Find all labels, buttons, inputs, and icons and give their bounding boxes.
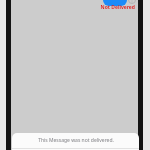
button[interactable] — [103, 0, 127, 6]
button[interactable]: This Message was not delivered. — [12, 133, 139, 150]
staticText: This Message was not delivered. — [38, 137, 114, 144]
staticText: Not Delivered — [100, 4, 135, 11]
button[interactable]: Message not delivered, tap to try again — [128, 0, 136, 4]
